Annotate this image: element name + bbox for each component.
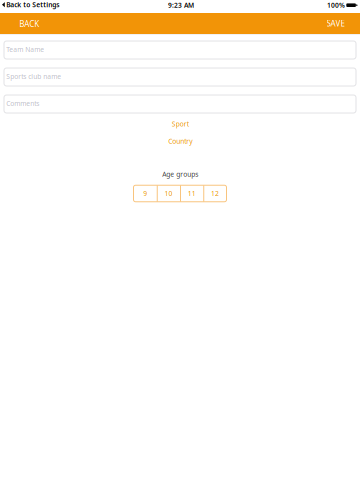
button[interactable]: 11	[180, 185, 203, 202]
button[interactable]: SAVE	[313, 13, 357, 34]
staticText: Back to Settings	[6, 0, 59, 9]
button[interactable]: BACK	[7, 13, 51, 34]
staticText: 12	[211, 189, 219, 198]
button[interactable]: Sports club name	[4, 68, 356, 86]
staticText: 100%	[327, 1, 345, 10]
staticText: 9:23 AM	[168, 1, 194, 10]
staticText: Comments	[6, 99, 39, 108]
button[interactable]: Country	[4, 135, 356, 147]
button[interactable]: Team Name	[4, 41, 356, 59]
button[interactable]: Back to Settings	[2, 0, 72, 11]
staticText: BACK	[19, 19, 39, 29]
staticText: 10	[164, 189, 172, 198]
staticText: 9	[143, 189, 147, 198]
staticText: 11	[188, 189, 196, 198]
button[interactable]: Sport	[4, 118, 356, 130]
staticText: Sports club name	[6, 72, 61, 81]
button[interactable]: Comments	[4, 95, 356, 113]
staticText: SAVE	[326, 18, 344, 29]
staticText: Age groups	[162, 170, 198, 179]
staticText: Country	[168, 137, 192, 146]
button[interactable]: 9	[133, 185, 157, 202]
button[interactable]: 12	[203, 185, 226, 202]
staticText: Team Name	[6, 45, 44, 54]
staticText: Sport	[172, 120, 189, 128]
button[interactable]: 10	[157, 185, 180, 202]
